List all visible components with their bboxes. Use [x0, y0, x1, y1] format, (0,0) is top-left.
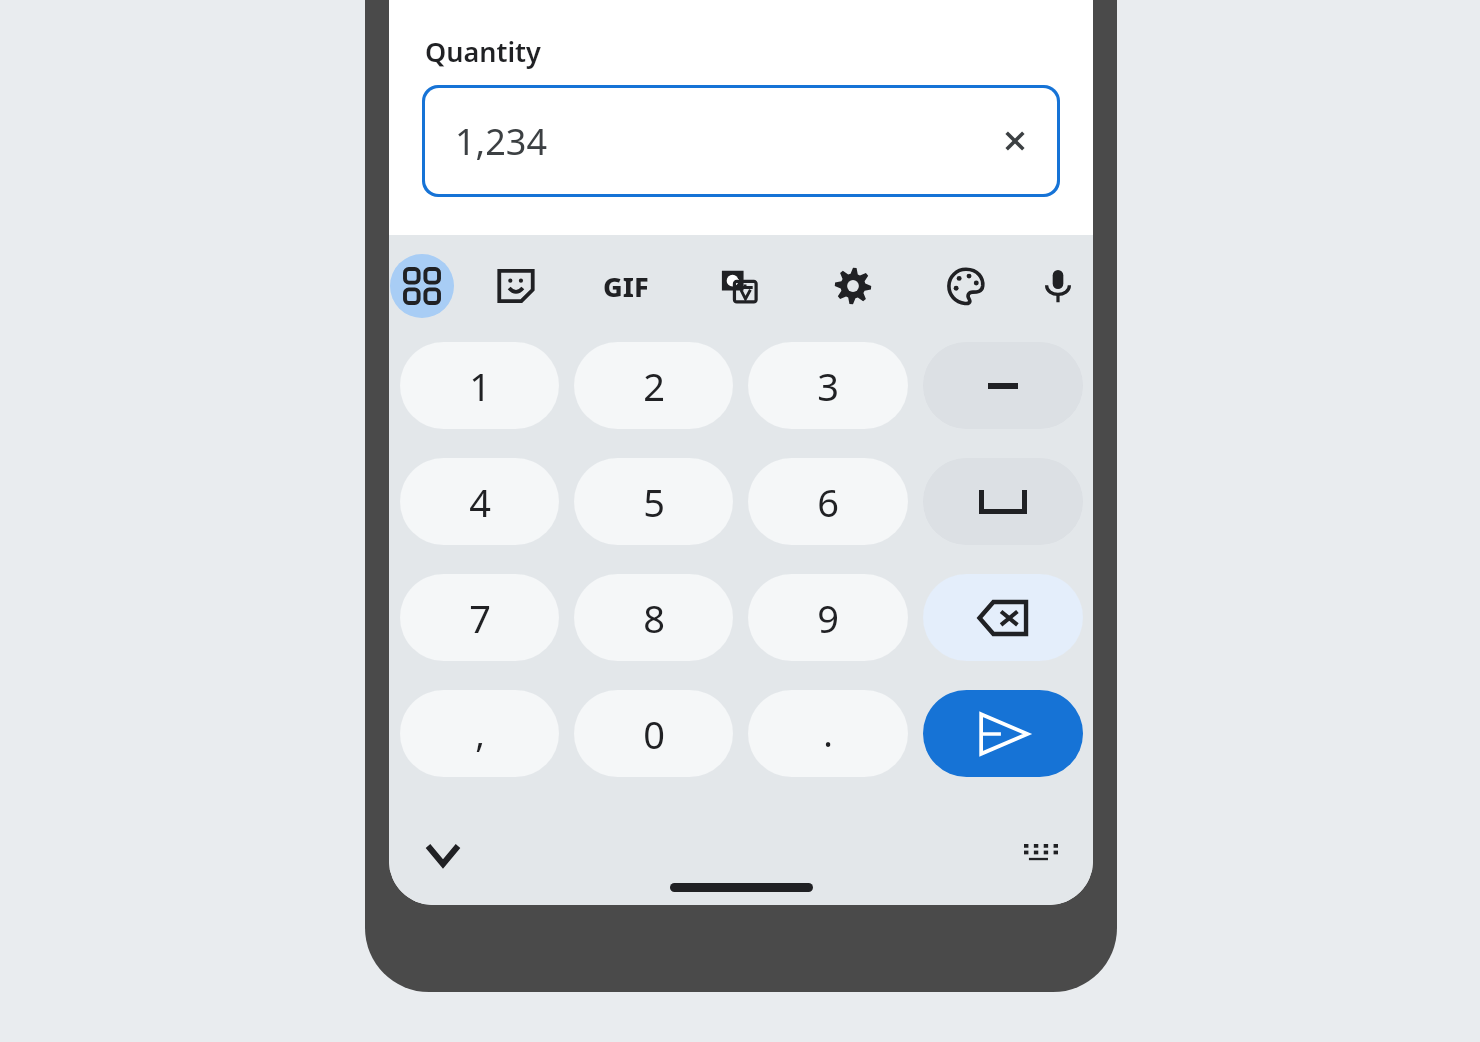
staticText: 0 — [643, 708, 665, 760]
staticText: 4 — [469, 476, 491, 528]
button[interactable]: Clear — [987, 113, 1043, 169]
staticText: 8 — [643, 592, 665, 644]
button[interactable]: 6 — [748, 458, 908, 545]
button[interactable]: , — [400, 690, 559, 777]
button[interactable]: 8 — [574, 574, 733, 661]
button[interactable]: . — [748, 690, 908, 777]
button[interactable]: 9 — [748, 574, 908, 661]
button[interactable]: 1 — [400, 342, 559, 429]
button[interactable]: Translate — [707, 254, 771, 318]
button[interactable]: Apps — [390, 254, 454, 318]
button[interactable]: 4 — [400, 458, 559, 545]
button[interactable]: 0 — [574, 690, 733, 777]
button[interactable]: Voice input — [1026, 254, 1090, 318]
button[interactable]: GIF — [594, 254, 658, 318]
staticText: Quantity — [425, 33, 541, 70]
button[interactable]: 1,234 — [422, 85, 1060, 197]
button[interactable]: Hide keyboard — [413, 825, 473, 885]
staticText: 3 — [817, 360, 839, 412]
staticText: 7 — [469, 592, 491, 644]
staticText: 6 — [817, 476, 839, 528]
button[interactable]: Settings — [821, 254, 885, 318]
staticText: . — [823, 709, 833, 758]
staticText: 2 — [643, 360, 665, 412]
button[interactable]: Send — [923, 690, 1083, 777]
staticText: GIF — [603, 268, 649, 305]
staticText: , — [475, 709, 485, 758]
button[interactable]: 3 — [748, 342, 908, 429]
staticText: 5 — [643, 476, 665, 528]
button[interactable]: Minus — [923, 342, 1083, 429]
button[interactable]: 7 — [400, 574, 559, 661]
button[interactable]: Stickers — [484, 254, 548, 318]
button[interactable]: Backspace — [923, 574, 1083, 661]
button[interactable]: Themes — [934, 254, 998, 318]
button[interactable]: Switch keyboard — [1011, 825, 1071, 885]
button[interactable]: Space — [923, 458, 1083, 545]
button[interactable]: 2 — [574, 342, 733, 429]
staticText: 1 — [469, 360, 491, 412]
staticText: 9 — [817, 592, 839, 644]
staticText: 1,234 — [455, 117, 548, 166]
button[interactable]: GIF — [594, 254, 658, 318]
button[interactable]: 5 — [574, 458, 733, 545]
